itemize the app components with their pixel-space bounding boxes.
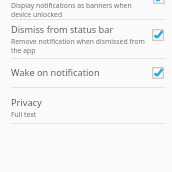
staticText: Wake on notification bbox=[11, 66, 100, 79]
button[interactable]: Display notifications as banners when de… bbox=[0, 0, 172, 18]
button[interactable]: Toggle Dismiss from status bar bbox=[151, 28, 165, 42]
button[interactable]: Toggle display notifications as banners bbox=[153, 0, 165, 4]
button[interactable]: Dismiss from status bar bbox=[0, 20, 172, 58]
staticText: Full text bbox=[11, 110, 37, 119]
staticText: Dismiss from status bar bbox=[11, 23, 114, 36]
button[interactable]: Toggle Wake on notification bbox=[151, 66, 165, 80]
staticText: Display notifications as banners when de… bbox=[11, 1, 148, 18]
staticText: Remove notification when dismissed from … bbox=[11, 37, 146, 55]
button[interactable]: Wake on notification bbox=[0, 59, 172, 87]
button[interactable]: Privacy bbox=[0, 88, 172, 123]
staticText: Privacy bbox=[11, 96, 42, 109]
